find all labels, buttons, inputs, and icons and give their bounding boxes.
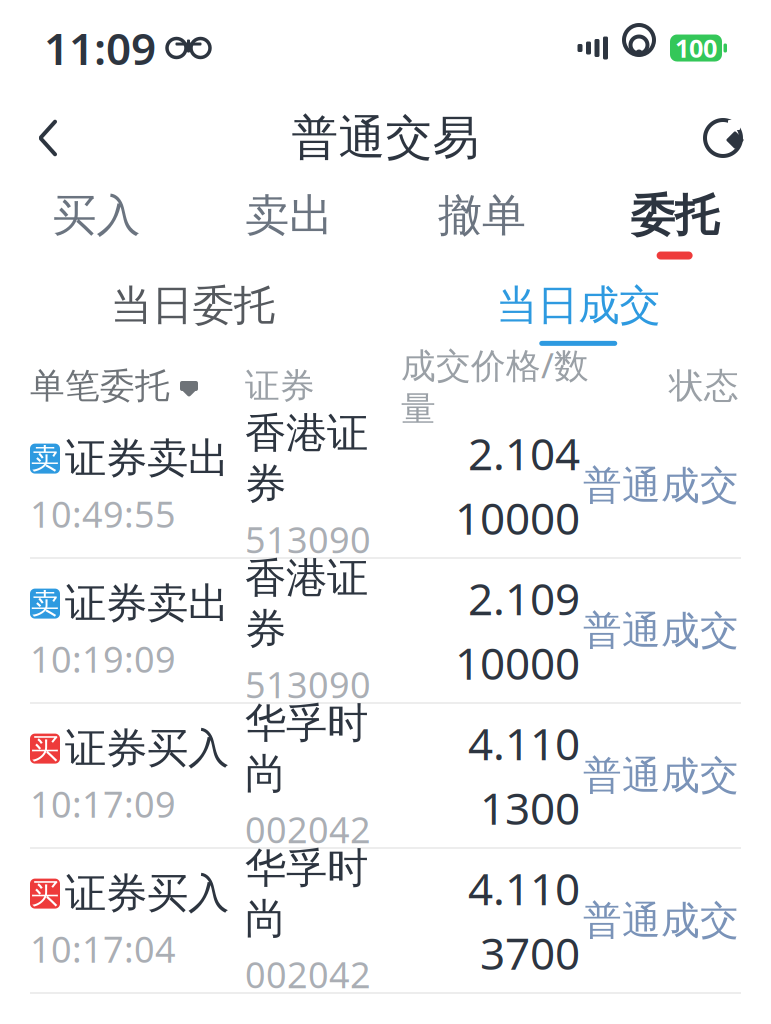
button[interactable]: 单笔委托 [30,358,245,414]
staticText: 香港证券 [245,553,368,654]
staticText: 100 [675,31,717,65]
staticText: 10:19:09 [30,635,176,683]
staticText: 2.109 [468,569,580,627]
staticText: 买 [31,876,59,911]
button[interactable]: 当日成交 [385,268,771,358]
staticText: 证券卖出 [65,578,229,629]
button[interactable]: 卖 [0,414,771,557]
button[interactable]: 买入 [0,180,193,268]
staticText: 4.110 [468,859,580,917]
staticText: 卖 [31,441,59,476]
staticText: 成交价格/数量 [401,342,589,430]
staticText: 普通成交 [583,897,739,944]
staticText: 香港证券 [245,408,368,509]
button[interactable]: 委托 [578,180,771,268]
staticText: 华孚时尚 [245,843,368,944]
button[interactable]: 刷新 [687,102,759,174]
button[interactable]: 卖 [0,559,771,702]
staticText: 证券买入 [65,723,229,774]
button[interactable]: 卖出 [193,180,386,268]
staticText: 10:17:04 [30,925,176,973]
staticText: 普通成交 [583,607,739,654]
staticText: 买 [31,731,59,766]
staticText: 华孚时尚 [245,698,368,799]
staticText: 状态 [669,365,739,407]
staticText: 撤单 [438,188,526,242]
button[interactable]: 返回 [12,102,84,174]
staticText: 当日成交 [496,280,660,331]
staticText: 证券卖出 [65,433,229,484]
staticText: 卖 [31,586,59,621]
staticText: 10:49:55 [30,490,176,538]
staticText: 3700 [480,923,580,982]
staticText: 卖出 [245,188,333,242]
staticText: 513090 [245,660,371,708]
staticText: 普通成交 [583,752,739,799]
button[interactable]: 撤单 [385,180,578,268]
staticText: 11:09 [44,19,156,77]
staticText: 单笔委托 [30,365,170,407]
staticText: 普通成交 [583,462,739,509]
button[interactable]: 买 [0,704,771,847]
staticText: 买入 [52,188,140,242]
button[interactable]: 当日委托 [0,268,385,358]
staticText: 委托 [631,188,719,242]
staticText: 普通交易 [291,109,479,167]
staticText: 10:17:09 [30,780,176,828]
staticText: 002042 [245,805,371,853]
staticText: 513090 [245,515,371,563]
staticText: 10000 [455,633,580,692]
staticText: 证券买入 [65,868,229,919]
staticText: 2.104 [468,424,580,482]
staticText: 1300 [480,778,580,837]
staticText: 10000 [455,488,580,547]
staticText: 4.110 [468,714,580,772]
staticText: 当日委托 [111,280,275,331]
staticText: 证券 [245,365,315,407]
staticText: 002042 [245,950,371,998]
button[interactable]: 买 [0,849,771,992]
